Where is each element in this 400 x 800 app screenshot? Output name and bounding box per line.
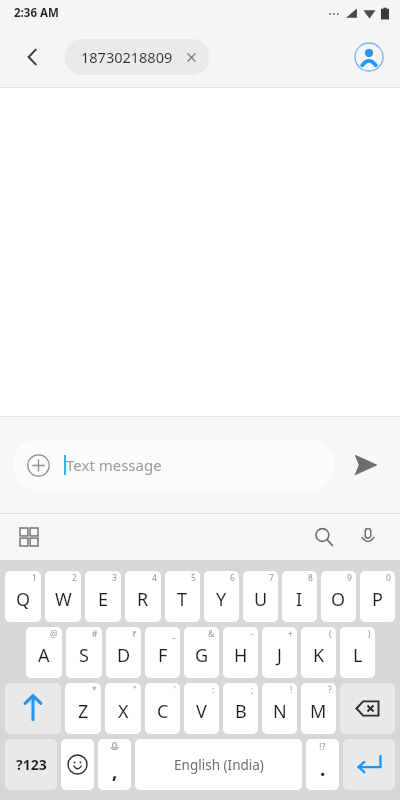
button[interactable]: " <box>105 683 141 734</box>
staticText: 5 <box>191 572 196 584</box>
staticText: Text message <box>66 455 162 475</box>
staticText: !? <box>319 740 326 752</box>
button[interactable]: Backspace <box>340 683 395 734</box>
button[interactable]: * <box>65 683 101 734</box>
staticText: @ <box>50 628 58 640</box>
button[interactable]: Text message <box>13 439 335 491</box>
staticText: , <box>112 758 118 784</box>
staticText: Z <box>78 699 89 724</box>
button[interactable]: 2 <box>45 571 81 622</box>
staticText: T <box>177 587 188 612</box>
staticText: 2:36 AM <box>14 5 59 21</box>
staticText: I <box>296 587 303 612</box>
button[interactable]: ? <box>301 683 336 734</box>
staticText: ) <box>368 628 371 640</box>
button[interactable]: English (India) <box>135 739 302 790</box>
staticText: ( <box>329 628 332 640</box>
button[interactable]: 18730218809 <box>65 39 209 75</box>
staticText: 4 <box>152 572 157 584</box>
button[interactable]: 5 <box>165 571 200 622</box>
button[interactable]: : <box>184 683 219 734</box>
staticText: F <box>158 643 168 668</box>
button[interactable]: , <box>98 739 131 790</box>
staticText: H <box>234 643 248 668</box>
staticText: _ <box>172 628 176 640</box>
staticText: D <box>117 643 131 668</box>
staticText: A <box>38 643 50 668</box>
button[interactable]: Back <box>16 40 50 74</box>
button[interactable]: & <box>184 627 219 678</box>
staticText: English (India) <box>174 756 264 774</box>
staticText: * <box>92 684 97 696</box>
staticText: ' <box>174 684 176 696</box>
staticText: P <box>372 587 383 612</box>
staticText: ₹ <box>132 628 137 640</box>
staticText: 7 <box>269 572 274 584</box>
staticText: V <box>196 699 207 724</box>
staticText: K <box>313 643 325 668</box>
button[interactable]: !? <box>306 739 339 790</box>
staticText: 8 <box>308 572 313 584</box>
staticText: B <box>235 699 247 724</box>
button[interactable]: @ <box>26 627 62 678</box>
staticText: Q <box>16 587 31 612</box>
staticText: & <box>208 628 215 640</box>
staticText: Y <box>216 587 227 612</box>
button[interactable]: Search <box>308 521 340 553</box>
staticText: - <box>251 628 254 640</box>
staticText: 18730218809 <box>81 47 173 67</box>
button[interactable]: 8 <box>282 571 317 622</box>
staticText: U <box>254 587 268 612</box>
button[interactable]: Add contact <box>352 40 386 74</box>
staticText: ; <box>251 684 254 696</box>
staticText: ?123 <box>16 755 47 774</box>
button[interactable]: Voice input <box>352 521 384 553</box>
staticText: N <box>273 699 287 724</box>
button[interactable]: Shift <box>5 683 61 734</box>
staticText: ? <box>328 684 332 696</box>
button[interactable]: + <box>262 627 297 678</box>
button[interactable]: 4 <box>125 571 161 622</box>
button[interactable]: ( <box>301 627 336 678</box>
staticText: W <box>55 587 72 612</box>
staticText: O <box>331 587 346 612</box>
button[interactable]: ; <box>223 683 258 734</box>
button[interactable]: - <box>223 627 258 678</box>
staticText: R <box>137 587 149 612</box>
button[interactable]: 9 <box>321 571 356 622</box>
button[interactable]: 7 <box>243 571 278 622</box>
button[interactable]: 3 <box>85 571 121 622</box>
staticText: 6 <box>230 572 235 584</box>
staticText: J <box>277 643 282 668</box>
button[interactable]: ! <box>262 683 297 734</box>
staticText: 0 <box>386 572 391 584</box>
button[interactable]: 1 <box>5 571 41 622</box>
staticText: 9 <box>347 572 352 584</box>
staticText: 2 <box>72 572 77 584</box>
staticText: " <box>133 684 137 696</box>
button[interactable]: ) <box>340 627 375 678</box>
button[interactable]: 0 <box>360 571 395 622</box>
staticText: . <box>320 756 326 782</box>
staticText: S <box>79 643 89 668</box>
button[interactable]: Send <box>345 444 387 486</box>
button[interactable]: Enter <box>343 739 395 790</box>
staticText: X <box>118 699 129 724</box>
staticText: + <box>288 628 293 640</box>
button[interactable]: # <box>66 627 102 678</box>
button[interactable]: Emoji <box>61 739 94 790</box>
staticText: : <box>212 684 215 696</box>
button[interactable]: 6 <box>204 571 239 622</box>
staticText: M <box>310 699 327 724</box>
button[interactable]: Apps <box>14 522 44 552</box>
button[interactable]: ' <box>145 683 180 734</box>
button[interactable]: _ <box>145 627 180 678</box>
staticText: E <box>98 587 109 612</box>
staticText: 1 <box>32 572 37 584</box>
staticText: # <box>92 628 98 640</box>
button[interactable]: ?123 <box>5 739 57 790</box>
staticText: G <box>195 643 209 668</box>
staticText: L <box>353 643 363 668</box>
staticText: 3 <box>112 572 117 584</box>
button[interactable]: ₹ <box>106 627 141 678</box>
